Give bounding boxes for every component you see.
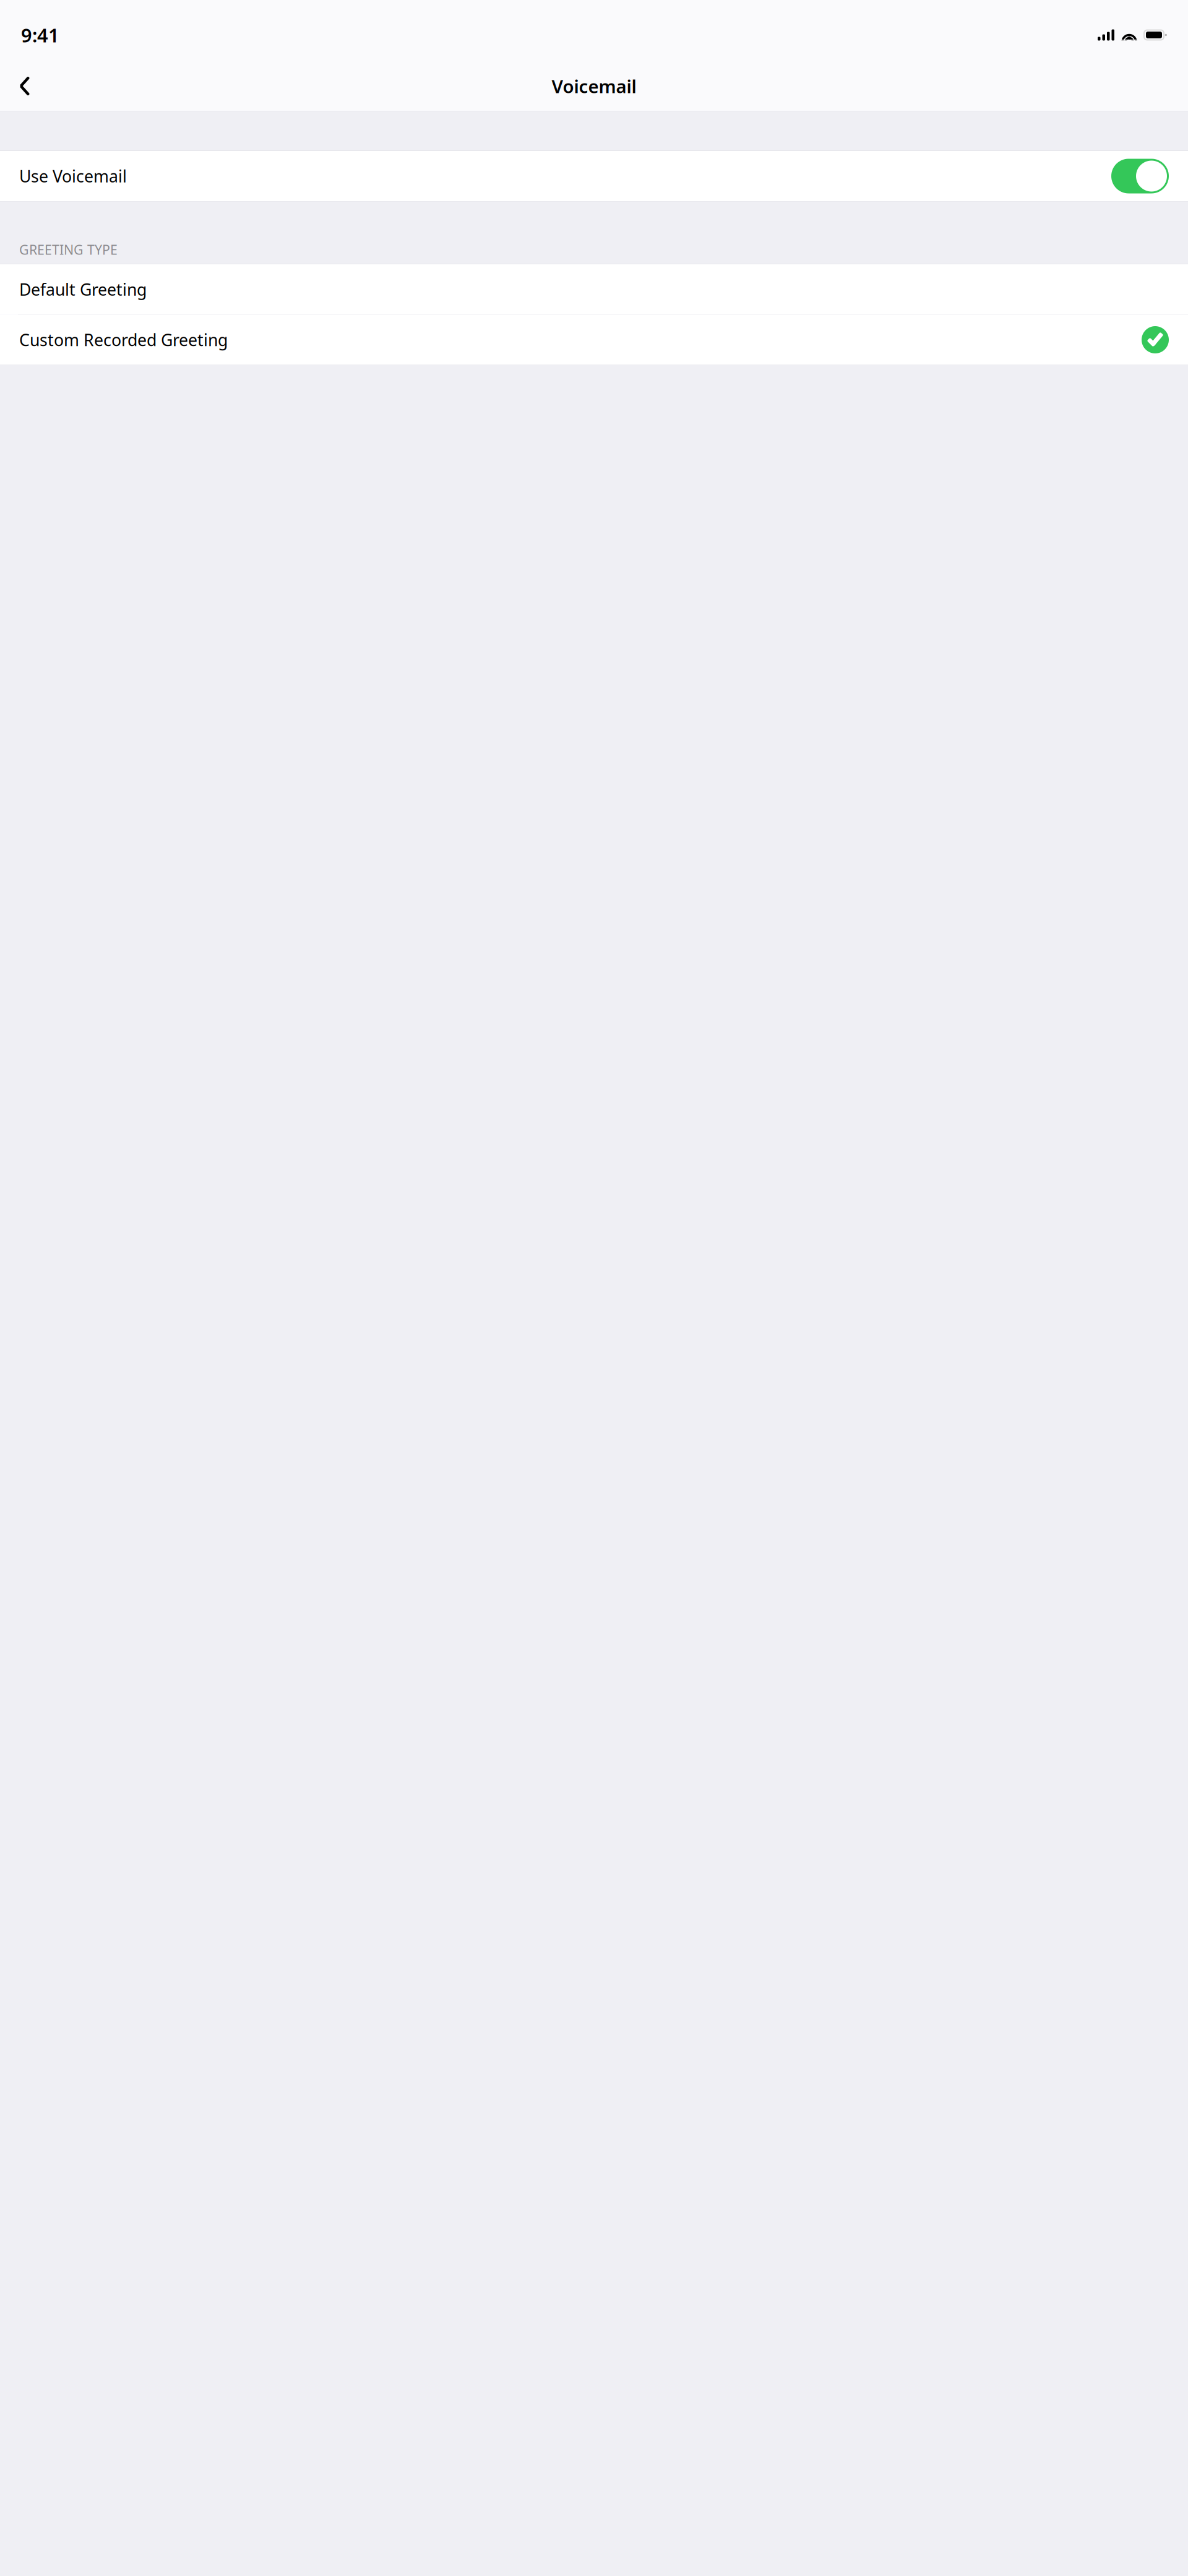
staticText: GREETING TYPE [19, 241, 118, 258]
button[interactable]: Back [7, 69, 42, 103]
button[interactable]: Default Greeting [0, 264, 1188, 314]
staticText: Voicemail [552, 74, 636, 98]
button[interactable]: Custom Recorded Greeting [0, 315, 1188, 365]
staticText: 9:41 [21, 22, 59, 48]
staticText: Default Greeting [19, 278, 147, 300]
staticText: Use Voicemail [19, 165, 127, 187]
button[interactable]: Use Voicemail [0, 151, 1188, 201]
staticText: Custom Recorded Greeting [19, 329, 228, 351]
